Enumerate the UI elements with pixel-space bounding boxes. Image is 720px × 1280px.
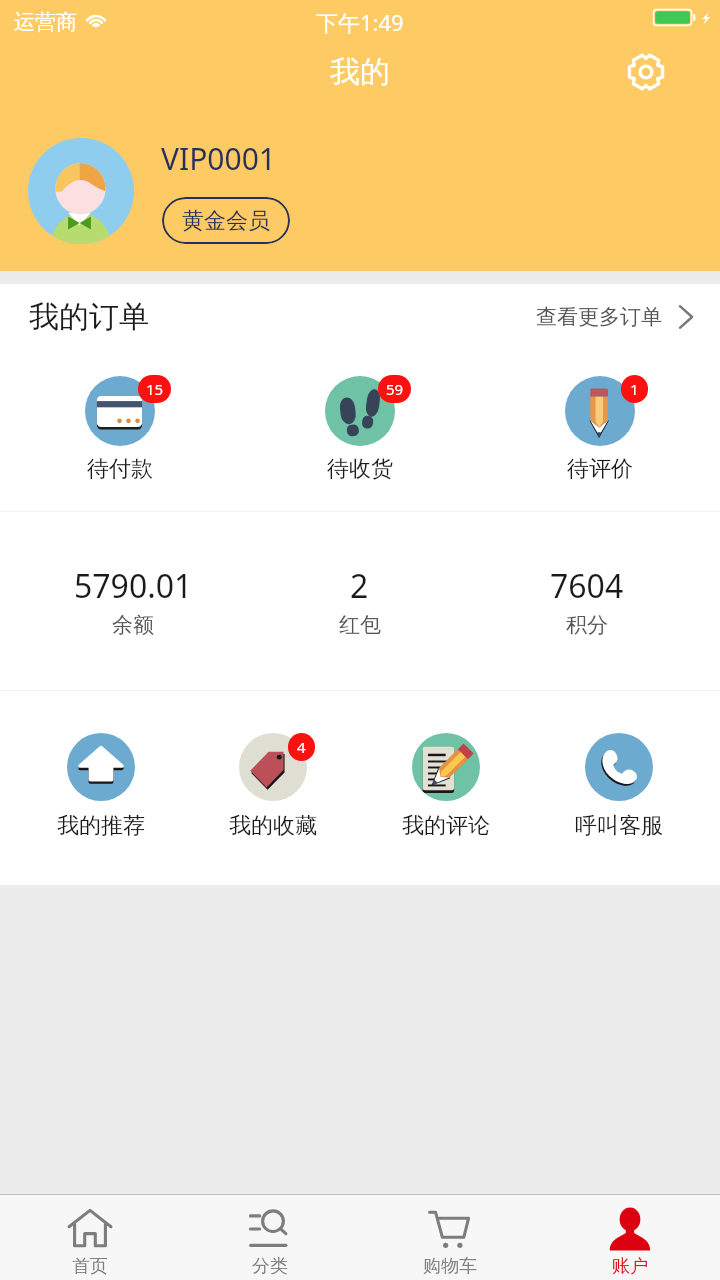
button[interactable]: 2 bbox=[246, 512, 473, 690]
button[interactable]: 1 bbox=[480, 349, 720, 511]
staticText: 分类 bbox=[252, 1255, 288, 1278]
button[interactable]: 4 bbox=[187, 691, 359, 885]
staticText: 余额 bbox=[112, 612, 154, 638]
button[interactable]: 我的评论 bbox=[359, 691, 532, 885]
staticText: 15 bbox=[146, 379, 164, 399]
staticText: 运营商 bbox=[14, 9, 77, 35]
staticText: 账户 bbox=[612, 1255, 648, 1278]
button[interactable]: 5790.01 bbox=[20, 512, 246, 690]
staticText: 59 bbox=[386, 379, 404, 399]
staticText: 查看更多订单 bbox=[536, 304, 662, 330]
staticText: 呼叫客服 bbox=[575, 812, 663, 840]
staticText: 下午1:49 bbox=[316, 7, 404, 37]
staticText: 我的订单 bbox=[29, 298, 149, 336]
staticText: 待收货 bbox=[327, 455, 393, 483]
staticText: 1 bbox=[630, 379, 639, 399]
staticText: 7604 bbox=[550, 564, 624, 608]
button[interactable]: 首页 bbox=[0, 1195, 180, 1280]
button[interactable]: 我的推荐 bbox=[15, 691, 187, 885]
button[interactable]: 账户 bbox=[540, 1195, 720, 1280]
button[interactable]: 黄金会员 bbox=[162, 197, 290, 244]
staticText: 黄金会员 bbox=[182, 207, 270, 235]
staticText: 购物车 bbox=[423, 1255, 477, 1278]
staticText: 我的收藏 bbox=[229, 812, 317, 840]
staticText: 首页 bbox=[72, 1255, 108, 1278]
staticText: 5790.01 bbox=[74, 564, 193, 608]
button[interactable]: 15 bbox=[0, 349, 240, 511]
staticText: 4 bbox=[297, 737, 306, 757]
staticText: 我的评论 bbox=[402, 812, 490, 840]
button[interactable]: Settings bbox=[618, 44, 674, 100]
staticText: 积分 bbox=[566, 612, 608, 638]
button[interactable]: 呼叫客服 bbox=[532, 691, 705, 885]
staticText: 2 bbox=[350, 564, 369, 608]
staticText: 我的推荐 bbox=[57, 812, 145, 840]
staticText: 红包 bbox=[339, 612, 381, 638]
staticText: VIP0001 bbox=[161, 138, 276, 179]
button[interactable]: Profile avatar bbox=[28, 138, 134, 244]
button[interactable]: 7604 bbox=[473, 512, 700, 690]
button[interactable]: 我的订单 bbox=[0, 284, 720, 349]
staticText: 我的 bbox=[330, 53, 390, 91]
staticText: 待评价 bbox=[567, 455, 633, 483]
staticText: 待付款 bbox=[87, 455, 153, 483]
button[interactable]: 分类 bbox=[180, 1195, 360, 1280]
button[interactable]: 59 bbox=[240, 349, 480, 511]
button[interactable]: 购物车 bbox=[360, 1195, 540, 1280]
